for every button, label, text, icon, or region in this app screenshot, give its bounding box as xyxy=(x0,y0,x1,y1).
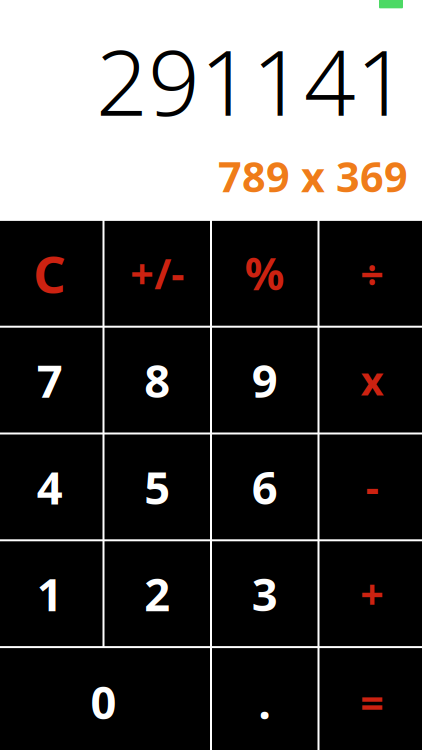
staticText: 6 xyxy=(252,457,278,517)
button[interactable]: ÷ xyxy=(319,221,422,326)
staticText: 9 xyxy=(252,350,278,410)
staticText: +/- xyxy=(130,246,184,301)
staticText: 291141 xyxy=(96,20,408,141)
staticText: + xyxy=(360,566,384,621)
button[interactable]: 3 xyxy=(212,541,317,646)
staticText: 7 xyxy=(37,350,63,410)
staticText: . xyxy=(258,671,271,732)
staticText: 4 xyxy=(37,457,63,517)
button[interactable]: = xyxy=(319,648,422,750)
button[interactable]: - xyxy=(319,434,422,539)
staticText: 0 xyxy=(90,671,116,732)
button[interactable]: % xyxy=(212,221,317,326)
staticText: C xyxy=(33,240,66,307)
staticText: = xyxy=(360,674,384,729)
staticText: 3 xyxy=(252,564,278,624)
staticText: 8 xyxy=(144,350,170,410)
button[interactable]: 9 xyxy=(212,328,317,432)
button[interactable]: 6 xyxy=(212,434,317,539)
button[interactable]: 2 xyxy=(104,541,210,646)
staticText: ÷ xyxy=(360,246,384,301)
staticText: - xyxy=(366,459,379,514)
button[interactable]: 8 xyxy=(104,328,210,432)
button[interactable]: 5 xyxy=(104,434,210,539)
button[interactable]: C xyxy=(0,221,102,326)
staticText: 2 xyxy=(144,564,170,624)
staticText: 789 x 369 xyxy=(218,149,408,204)
button[interactable]: . xyxy=(212,648,317,750)
staticText: 1 xyxy=(37,564,63,624)
staticText: x xyxy=(361,353,384,407)
staticText: % xyxy=(245,244,285,302)
button[interactable]: 0 xyxy=(0,648,210,750)
button[interactable]: 4 xyxy=(0,434,102,539)
button[interactable]: 7 xyxy=(0,328,102,432)
button[interactable]: 1 xyxy=(0,541,102,646)
button[interactable]: x xyxy=(319,328,422,432)
staticText: 5 xyxy=(144,457,170,517)
button[interactable]: +/- xyxy=(104,221,210,326)
button[interactable]: + xyxy=(319,541,422,646)
